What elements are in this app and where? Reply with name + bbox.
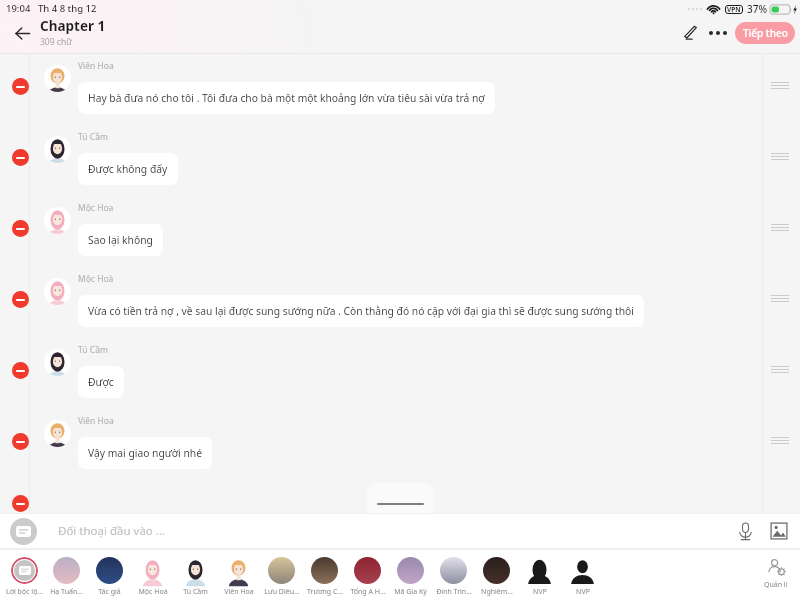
- button[interactable]: Vừa có tiền trả nợ , về sau lại được sun…: [78, 295, 644, 327]
- staticText: Mộc Hoa: [78, 202, 114, 214]
- staticText: 37%: [747, 2, 767, 16]
- staticText: 19:04: [6, 2, 31, 15]
- staticText: Sao lại không: [88, 233, 153, 247]
- button[interactable]: Tác giả: [88, 549, 131, 597]
- button[interactable]: Delete: [12, 149, 29, 166]
- staticText: Viên Hoa: [78, 60, 114, 72]
- button[interactable]: Reorder: [771, 294, 789, 303]
- staticText: Hạ Tuấn...: [50, 587, 83, 597]
- staticText: Tác giả: [98, 587, 121, 597]
- button[interactable]: NVP: [561, 549, 604, 597]
- staticText: Quản lí: [764, 580, 788, 590]
- button[interactable]: Đinh Trìn...: [432, 549, 475, 597]
- staticText: Tú Cầm: [78, 131, 108, 143]
- button[interactable]: Mã Gia Kỳ: [389, 549, 432, 597]
- button[interactable]: More options: [706, 21, 730, 45]
- button[interactable]: Viên Hoa: [217, 549, 260, 597]
- button[interactable]: Nghiêm...: [475, 549, 518, 597]
- button[interactable]: Reorder: [771, 365, 789, 374]
- staticText: Đinh Trìn...: [436, 587, 472, 597]
- staticText: Lời bộc lộ...: [6, 587, 43, 597]
- staticText: Chapter 1: [40, 17, 106, 35]
- staticText: Viên Hoa: [78, 415, 114, 427]
- staticText: Viên Hoa: [224, 587, 254, 597]
- staticText: Trương C...: [307, 587, 343, 597]
- button[interactable]: Tống A H...: [346, 549, 389, 597]
- button[interactable]: Voice input: [732, 518, 758, 544]
- button[interactable]: Được không đấy: [78, 153, 178, 185]
- staticText: Nghiêm...: [481, 587, 513, 597]
- button[interactable]: Tiếp theo: [735, 22, 795, 44]
- staticText: Vừa có tiền trả nợ , về sau lại được sun…: [88, 304, 634, 318]
- button[interactable]: Reorder: [771, 436, 789, 445]
- button[interactable]: Lưu Diêu...: [260, 549, 303, 597]
- button[interactable]: Quản lí: [757, 549, 795, 590]
- staticText: Tú Cầm: [78, 344, 108, 356]
- button[interactable]: Được: [78, 366, 124, 398]
- staticText: Được: [88, 375, 114, 389]
- staticText: Th 4 8 thg 12: [38, 2, 97, 15]
- button[interactable]: Hạ Tuấn...: [45, 549, 88, 597]
- staticText: Mã Gia Kỳ: [394, 587, 427, 597]
- staticText: Hay bà đưa nó cho tôi . Tôi đưa cho bà m…: [88, 91, 485, 105]
- staticText: VPN: [727, 5, 741, 14]
- button[interactable]: Sao lại không: [78, 224, 163, 256]
- staticText: Vậy mai giao người nhé: [88, 446, 202, 460]
- staticText: Mộc Hoà: [138, 587, 168, 597]
- button[interactable]: Hay bà đưa nó cho tôi . Tôi đưa cho bà m…: [78, 82, 495, 114]
- button[interactable]: Back: [9, 20, 35, 46]
- button[interactable]: Edit: [679, 21, 703, 45]
- button[interactable]: NVP: [518, 549, 561, 597]
- button[interactable]: Tú Cầm: [174, 549, 217, 597]
- button[interactable]: Reorder: [771, 223, 789, 232]
- staticText: NVP: [576, 587, 590, 597]
- staticText: Được không đấy: [88, 162, 168, 176]
- staticText: Đối thoại đầu vào ...: [58, 523, 166, 539]
- button[interactable]: Delete: [12, 362, 29, 379]
- button[interactable]: Delete: [12, 495, 29, 512]
- button[interactable]: Delete: [12, 78, 29, 95]
- staticText: Tống A H...: [350, 587, 386, 597]
- button[interactable]: Delete: [12, 433, 29, 450]
- button[interactable]: Dialogue type: [10, 518, 37, 545]
- button[interactable]: Reorder: [771, 152, 789, 161]
- button[interactable]: Reorder: [771, 81, 789, 90]
- staticText: NVP: [533, 587, 547, 597]
- button[interactable]: Delete: [12, 220, 29, 237]
- staticText: Lưu Diêu...: [264, 587, 300, 597]
- button[interactable]: Vậy mai giao người nhé: [78, 437, 212, 469]
- button[interactable]: Trương C...: [303, 549, 346, 597]
- staticText: Mộc Hoà: [78, 273, 114, 285]
- button[interactable]: Delete: [12, 291, 29, 308]
- button[interactable]: Insert image: [766, 518, 792, 544]
- button[interactable]: Mộc Hoà: [131, 549, 174, 597]
- button[interactable]: Lời bộc lộ...: [3, 549, 45, 597]
- staticText: Tú Cầm: [183, 587, 208, 597]
- staticText: Tiếp theo: [743, 26, 788, 40]
- staticText: 309 chữ: [40, 36, 72, 48]
